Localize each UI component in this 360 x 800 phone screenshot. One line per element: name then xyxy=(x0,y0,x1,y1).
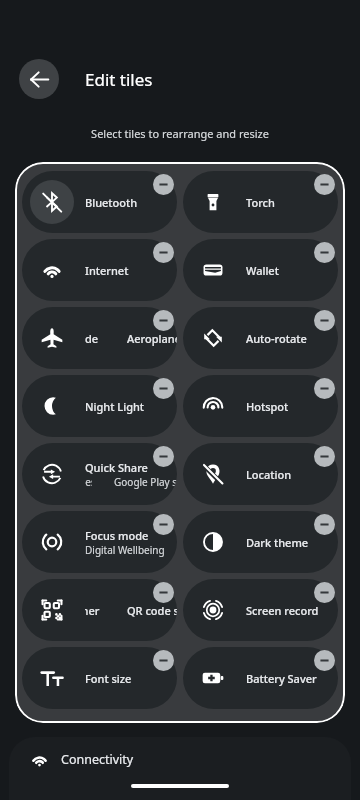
button[interactable]: Remove Bluetooth xyxy=(153,174,174,195)
button[interactable]: Remove Dark theme xyxy=(314,514,335,535)
staticText: Digital Wellbeing xyxy=(85,543,165,557)
button[interactable]: Location xyxy=(183,443,338,505)
button[interactable]: Night Light xyxy=(22,375,177,437)
button[interactable]: Remove Auto-rotate xyxy=(314,310,335,331)
staticText: Edit tiles xyxy=(85,68,153,91)
button[interactable]: Battery Saver xyxy=(183,647,338,709)
button[interactable]: Remove Location xyxy=(314,446,335,467)
staticText: Hotspot xyxy=(246,399,289,414)
button[interactable]: Remove Screen record xyxy=(314,582,335,603)
staticText: QR code scanner xyxy=(85,603,100,618)
staticText: Aeroplane mode xyxy=(85,331,99,346)
button[interactable]: Bluetooth xyxy=(22,171,177,233)
button[interactable]: Remove QR code scanner xyxy=(153,582,174,603)
staticText: Select tiles to rearrange and resize xyxy=(0,126,360,141)
staticText: QR code scanner xyxy=(127,603,177,618)
button[interactable]: Wallet xyxy=(183,239,338,301)
button[interactable]: Screen record xyxy=(183,579,338,641)
staticText: Bluetooth xyxy=(85,195,138,210)
staticText: Auto-rotate xyxy=(246,331,307,346)
button[interactable]: Hotspot xyxy=(183,375,338,437)
staticText: Focus mode xyxy=(85,528,149,543)
button[interactable]: Focus mode xyxy=(22,511,177,573)
button[interactable]: Remove Hotspot xyxy=(314,378,335,399)
button[interactable]: Remove Wallet xyxy=(314,242,335,263)
staticText: Location xyxy=(246,467,292,482)
button[interactable]: Back xyxy=(19,59,59,99)
staticText: Internet xyxy=(85,263,129,278)
staticText: Wallet xyxy=(246,263,279,278)
staticText: Screen record xyxy=(246,603,319,618)
button[interactable]: Font size xyxy=(22,647,177,709)
button[interactable]: Remove Aeroplane mode xyxy=(153,310,174,331)
button[interactable]: Remove Focus mode xyxy=(153,514,174,535)
staticText: Night Light xyxy=(85,399,145,414)
button[interactable]: Auto-rotate xyxy=(183,307,338,369)
button[interactable]: QR code scanner xyxy=(22,579,177,641)
button[interactable]: Internet xyxy=(22,239,177,301)
button[interactable]: Remove Internet xyxy=(153,242,174,263)
staticText: Battery Saver xyxy=(246,671,317,686)
staticText: Dark theme xyxy=(246,535,309,550)
staticText: Quick Share xyxy=(85,460,148,475)
staticText: Connectivity xyxy=(61,751,134,768)
button[interactable]: Connectivity xyxy=(9,737,351,800)
staticText: Aeroplane mode xyxy=(127,331,177,346)
staticText: Font size xyxy=(85,671,132,686)
button[interactable]: Aeroplane mode xyxy=(22,307,177,369)
staticText: Google Play services xyxy=(85,475,92,489)
button[interactable]: Remove Font size xyxy=(153,650,174,671)
button[interactable]: Quick Share xyxy=(22,443,177,505)
button[interactable]: Dark theme xyxy=(183,511,338,573)
button[interactable]: Remove Battery Saver xyxy=(314,650,335,671)
button[interactable]: Remove Torch xyxy=(314,174,335,195)
staticText: Torch xyxy=(246,195,275,210)
button[interactable]: Torch xyxy=(183,171,338,233)
button[interactable]: Remove Night Light xyxy=(153,378,174,399)
button[interactable]: Remove Quick Share xyxy=(153,446,174,467)
staticText: Google Play services xyxy=(114,475,177,489)
